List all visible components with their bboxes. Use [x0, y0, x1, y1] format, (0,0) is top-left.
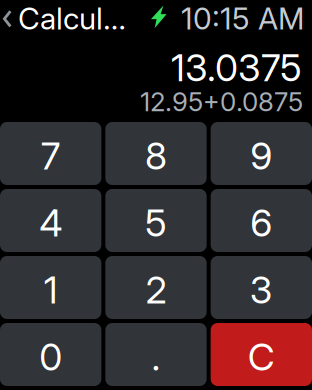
- staticText: 6: [250, 200, 272, 246]
- button[interactable]: 1: [0, 256, 101, 319]
- staticText: 8: [145, 133, 167, 179]
- button[interactable]: 3: [211, 256, 312, 319]
- staticText: 4: [39, 200, 62, 246]
- button[interactable]: 2: [105, 256, 207, 319]
- button[interactable]: C: [211, 323, 312, 386]
- button[interactable]: 8: [105, 122, 207, 185]
- staticText: 13.0375: [171, 45, 302, 90]
- staticText: 7: [41, 133, 61, 179]
- button[interactable]: 0: [0, 323, 101, 386]
- staticText: Calcul…: [18, 0, 126, 37]
- staticText: 5: [145, 200, 167, 246]
- staticText: 9: [250, 133, 272, 179]
- staticText: 0: [39, 334, 62, 380]
- button[interactable]: 7: [0, 122, 101, 185]
- staticText: 2: [145, 267, 166, 313]
- button[interactable]: 6: [211, 189, 312, 252]
- button[interactable]: .: [105, 323, 207, 386]
- button[interactable]: 5: [105, 189, 207, 252]
- button[interactable]: Back: [0, 0, 126, 34]
- staticText: C: [248, 334, 275, 380]
- button[interactable]: 4: [0, 189, 101, 252]
- button[interactable]: 9: [211, 122, 312, 185]
- staticText: 3: [250, 267, 273, 313]
- staticText: 12.95+0.0875: [140, 86, 303, 117]
- staticText: .: [151, 334, 160, 380]
- staticText: 10:15 AM: [181, 0, 304, 37]
- staticText: 1: [44, 267, 58, 313]
